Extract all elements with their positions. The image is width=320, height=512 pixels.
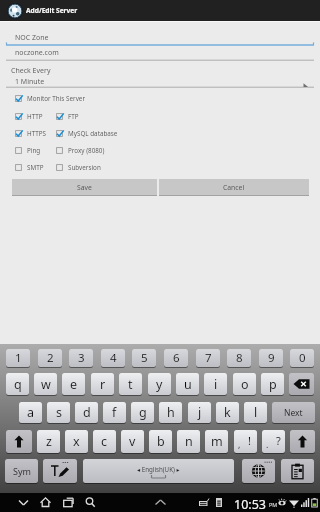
button[interactable]: 7 [196,349,220,367]
button[interactable]: b [149,430,172,453]
button[interactable]: Recents [57,493,79,512]
button[interactable]: Sym [5,459,38,483]
button[interactable]: ! [234,430,257,453]
button[interactable]: Shift [290,430,315,453]
staticText: 2 [47,350,54,366]
button[interactable]: Backspace [289,373,314,395]
staticText: Ping [27,146,41,155]
button[interactable]: 5 [132,349,156,367]
staticText: p [269,376,277,393]
button[interactable]: h [159,402,182,423]
staticText: x [73,433,80,450]
staticText: HTTPS [27,129,47,138]
button[interactable]: HTTP [15,111,43,122]
staticText: a [27,404,35,421]
button[interactable]: 4 [101,349,125,367]
staticText: HTTP [27,112,43,121]
button[interactable]: Next [272,402,315,423]
staticText: 9 [268,350,275,366]
button[interactable]: Monitor This Server [15,93,85,104]
button[interactable]: d [75,402,98,423]
button[interactable]: 9 [259,349,283,367]
button[interactable]: Proxy (8080) [56,145,105,156]
staticText: f [112,404,117,421]
button[interactable]: q [6,373,29,395]
staticText: 4 [110,350,117,366]
button[interactable]: Clipboard [281,459,314,483]
staticText: Proxy (8080) [68,146,105,155]
button[interactable]: FTP [56,111,79,122]
button[interactable]: ? [262,430,285,453]
button[interactable]: Subversion [56,162,101,173]
button[interactable]: g [131,402,154,423]
button[interactable]: w [34,373,57,395]
staticText: Monitor This Server [27,94,85,103]
staticText: g [139,404,147,421]
button[interactable]: y [148,373,171,395]
staticText: Check Every [11,66,51,76]
button[interactable]: u [176,373,199,395]
staticText: 7 [205,350,212,366]
button[interactable]: SMTP [15,162,44,173]
button[interactable]: 3 [69,349,93,367]
button[interactable]: MySQL database [56,128,118,139]
button[interactable]: f [103,402,126,423]
staticText: FTP [68,112,79,121]
button[interactable]: o [233,373,256,395]
button[interactable]: a [19,402,42,423]
button[interactable]: z [37,430,60,453]
button[interactable]: 2 [38,349,62,367]
button[interactable]: Ping [15,145,41,156]
button[interactable]: r [91,373,114,395]
button[interactable]: Change language [242,459,275,483]
button[interactable]: k [216,402,239,423]
staticText: Subversion [68,163,101,172]
button[interactable]: Save [12,179,157,196]
button[interactable]: 8 [227,349,251,367]
button[interactable]: v [121,430,144,453]
button[interactable]: e [62,373,85,395]
button[interactable]: Home [34,493,56,512]
staticText: Add/Edit Server [26,6,78,15]
button[interactable]: HTTPS [15,128,47,139]
button[interactable]: n [177,430,200,453]
staticText: c [101,433,108,450]
button[interactable]: noczone.com [0,45,320,62]
button[interactable]: 0 [290,349,314,367]
button[interactable]: j [188,402,211,423]
button[interactable]: s [47,402,70,423]
staticText: ◂ English(UK) ▸ [137,465,180,473]
staticText: MySQL database [68,129,118,138]
staticText: 5 [141,350,148,366]
button[interactable]: Cancel [159,179,309,196]
staticText: w [41,376,51,393]
staticText: NOC Zone [15,33,49,43]
staticText: d [83,404,91,421]
button[interactable]: x [65,430,88,453]
staticText: z [46,433,52,450]
staticText: . [266,438,269,450]
button[interactable]: p [261,373,284,395]
staticText: 8 [236,350,243,366]
staticText: , [238,438,241,450]
button[interactable]: Handwriting [43,459,77,483]
button[interactable]: i [204,373,227,395]
button[interactable]: Space [83,459,234,483]
button[interactable]: Add/Edit Server [0,0,320,21]
button[interactable]: Search [79,493,101,512]
staticText: e [70,376,78,393]
button[interactable]: Hide keyboard [12,493,34,512]
button[interactable]: 6 [164,349,188,367]
staticText: s [56,404,62,421]
staticText: m [211,433,223,450]
button[interactable]: 1 Minute [0,74,320,88]
button[interactable]: t [119,373,142,395]
button[interactable]: NOC Zone [0,30,320,47]
button[interactable]: Shift [6,430,32,453]
button[interactable]: Expand notifications [149,493,171,512]
button[interactable]: c [93,430,116,453]
staticText: Save [77,183,92,192]
button[interactable]: l [244,402,267,423]
button[interactable]: 1 [6,349,30,367]
button[interactable]: m [205,430,228,453]
